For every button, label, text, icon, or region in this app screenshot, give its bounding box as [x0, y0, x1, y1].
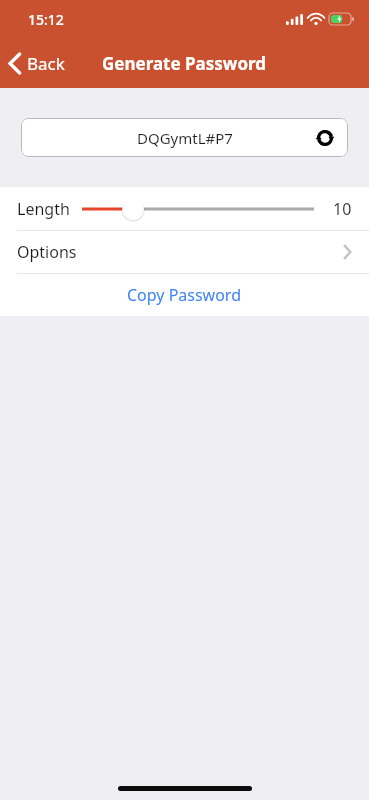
staticText: Options [17, 241, 77, 263]
button[interactable]: Options [0, 231, 369, 273]
button[interactable]: Regenerate password [310, 123, 340, 153]
button[interactable]: Back [0, 41, 75, 85]
staticText: 10 [333, 198, 352, 220]
staticText: 15:12 [28, 10, 64, 29]
button[interactable] [82, 195, 314, 223]
staticText: Length [17, 198, 70, 220]
button[interactable]: Length [0, 187, 369, 230]
staticText: Generate Password [102, 52, 267, 75]
staticText: Copy Password [127, 284, 242, 306]
button[interactable]: Copy Password [0, 274, 369, 316]
staticText: Back [27, 52, 65, 75]
staticText: DQGymtL#P7 [137, 128, 233, 148]
